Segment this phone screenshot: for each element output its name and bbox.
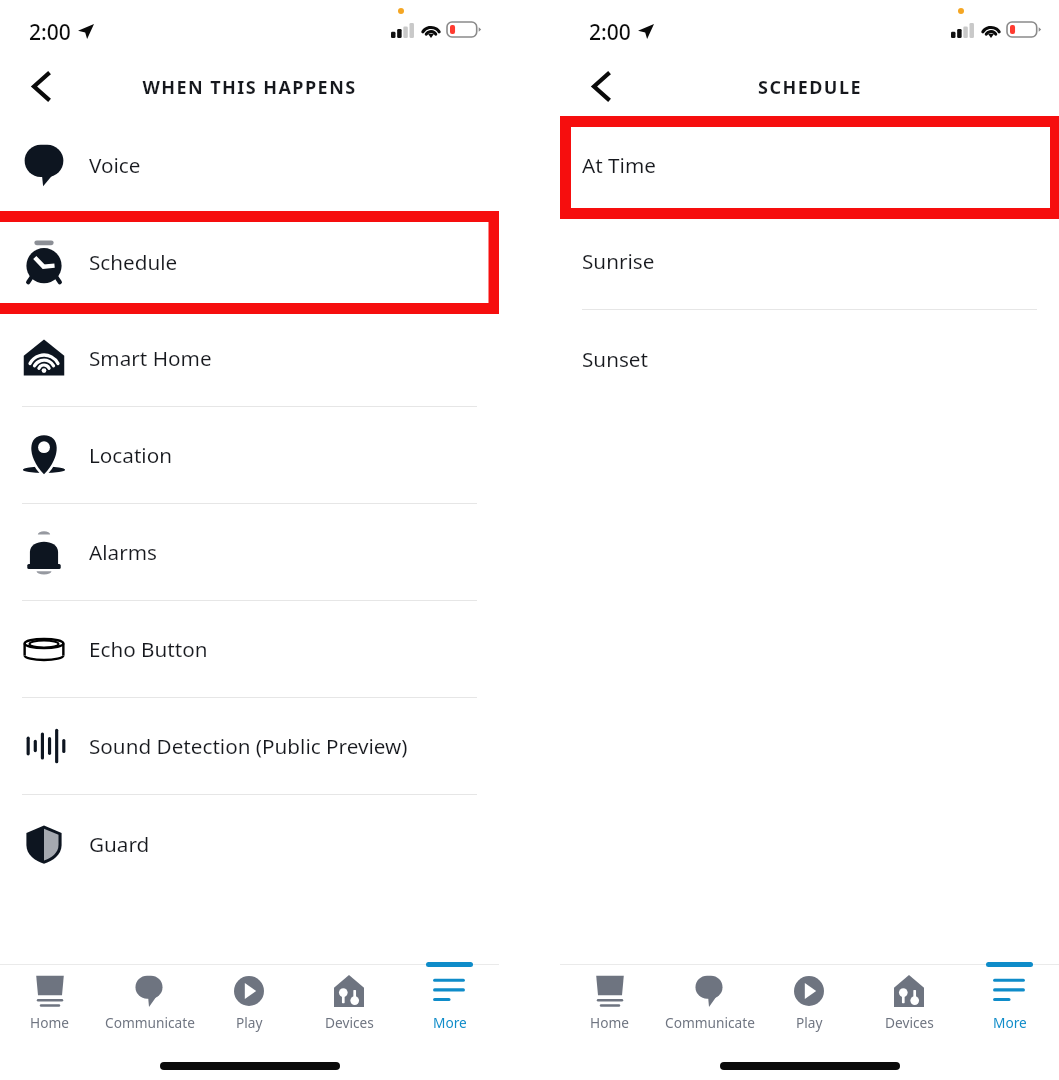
staticText: Guard [89,830,150,858]
staticText: Location [89,441,172,469]
button[interactable]: Back [14,58,66,110]
button[interactable]: Play [759,964,859,1038]
button[interactable]: Devices [859,964,959,1038]
staticText: Schedule [89,248,178,276]
button[interactable]: Play [199,964,299,1038]
staticText: Sunrise [582,247,655,275]
staticText: Devices [325,1013,374,1032]
staticText: Home [590,1013,629,1032]
staticText: Devices [885,1013,934,1032]
staticText: Alarms [89,538,157,566]
staticText: Echo Button [89,635,208,663]
staticText: Communicate [665,1013,755,1032]
staticText: More [433,1013,467,1032]
button[interactable]: Home [560,964,659,1038]
button[interactable]: Back [574,58,626,110]
button[interactable]: Smart Home [0,310,499,407]
button[interactable]: More [959,964,1059,1038]
button[interactable]: Schedule [0,213,499,310]
staticText: Communicate [105,1013,195,1032]
staticText: Smart Home [89,344,212,372]
staticText: Home [30,1013,69,1032]
staticText: Sound Detection (Public Preview) [89,732,408,760]
staticText: 2:00 [589,18,631,47]
button[interactable]: Communicate [99,964,199,1038]
staticText: Sunset [582,345,648,373]
button[interactable]: Sound Detection (Public Preview) [0,698,499,795]
staticText: WHEN THIS HAPPENS [142,75,357,100]
staticText: More [993,1013,1027,1032]
staticText: At Time [582,151,656,179]
staticText: SCHEDULE [758,75,862,100]
button[interactable]: Sunrise [560,213,1059,310]
button[interactable]: Echo Button [0,601,499,698]
button[interactable]: Devices [299,964,399,1038]
button[interactable]: Home [0,964,99,1038]
button[interactable]: Voice [0,116,499,213]
staticText: 2:00 [29,18,71,47]
staticText: Play [236,1013,263,1032]
button[interactable]: Location [0,407,499,504]
button[interactable]: Sunset [560,310,1059,407]
button[interactable]: Alarms [0,504,499,601]
button[interactable]: Guard [0,795,499,892]
button[interactable]: More [399,964,499,1038]
button[interactable]: At Time [560,116,1059,213]
button[interactable]: Communicate [659,964,759,1038]
staticText: Play [796,1013,823,1032]
staticText: Voice [89,151,141,179]
